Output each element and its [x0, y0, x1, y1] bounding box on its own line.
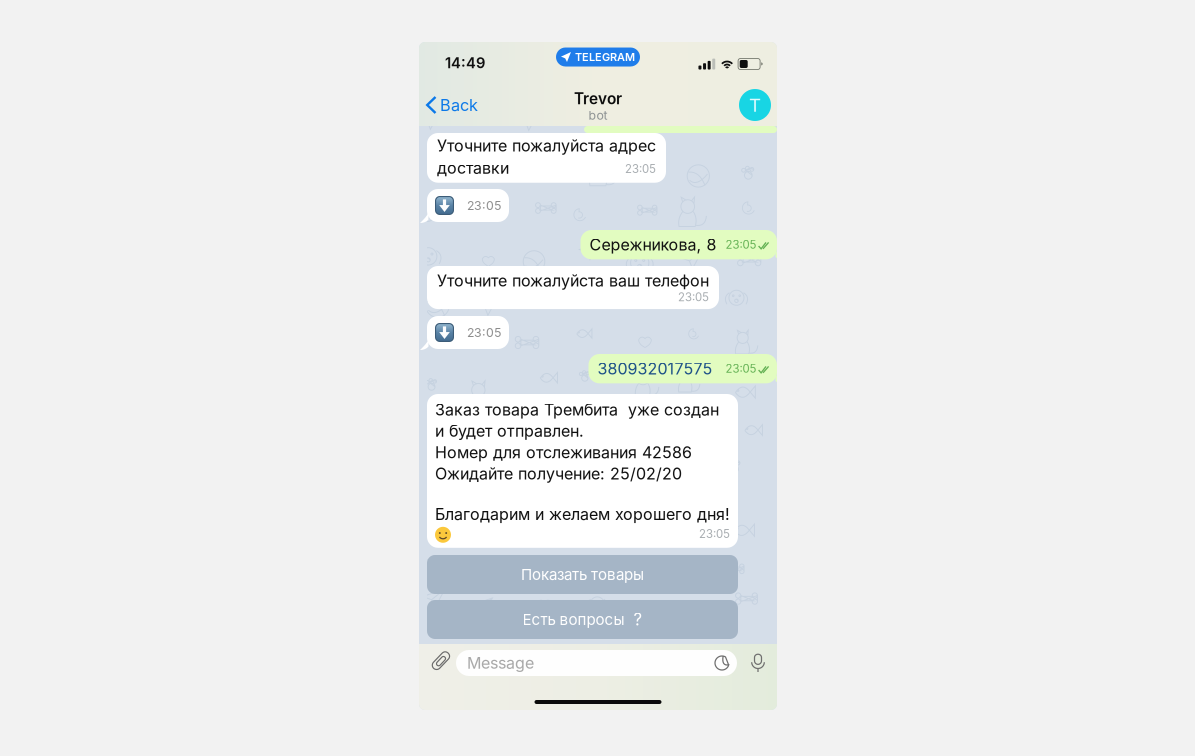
staticText: 23:05	[625, 162, 656, 176]
staticText: Показать товары	[521, 565, 644, 584]
staticText: T	[749, 94, 761, 116]
staticText: Сережникова, 8	[589, 235, 716, 254]
staticText: 23:05	[467, 325, 501, 340]
staticText: TELEGRAM	[575, 50, 635, 64]
staticText: Уточните пожалуйста адрес	[437, 136, 656, 155]
staticText: Заказ товара Трембита уже создан	[435, 400, 719, 419]
staticText: 23:05	[725, 362, 756, 375]
staticText: Уточните пожалуйста ваш телефон	[437, 271, 709, 290]
staticText: 380932017575	[597, 359, 712, 378]
staticText: Ожидайте получение: 25/02/20	[435, 464, 682, 483]
staticText: 23:05	[467, 198, 501, 213]
staticText: bot	[588, 108, 607, 123]
button[interactable]: Back	[419, 85, 486, 125]
button[interactable]: Stickers	[713, 654, 731, 672]
button[interactable]: Voice message	[747, 652, 769, 674]
staticText: 23:05	[699, 527, 730, 541]
button[interactable]: Показать товары	[427, 555, 738, 594]
staticText: Есть вопросы	[522, 610, 624, 629]
staticText: Back	[440, 95, 478, 115]
staticText: Номер для отслеживания 42586	[435, 443, 692, 462]
staticText: ?	[633, 609, 642, 630]
staticText: 14:49	[445, 54, 485, 72]
button[interactable]: Attach	[429, 651, 453, 675]
staticText: Message	[467, 653, 534, 673]
button[interactable]: Trevor profile	[735, 85, 775, 125]
staticText: доставки	[437, 158, 509, 178]
staticText: Благодарим и желаем хорошего дня!	[435, 504, 730, 524]
button[interactable]: Есть вопросы	[427, 600, 738, 639]
button[interactable]: Telegram	[556, 47, 640, 66]
staticText: и будет отправлен.	[435, 421, 584, 441]
staticText: 23:05	[725, 238, 756, 251]
staticText: Trevor	[574, 89, 622, 108]
staticText: 23:05	[678, 290, 709, 304]
